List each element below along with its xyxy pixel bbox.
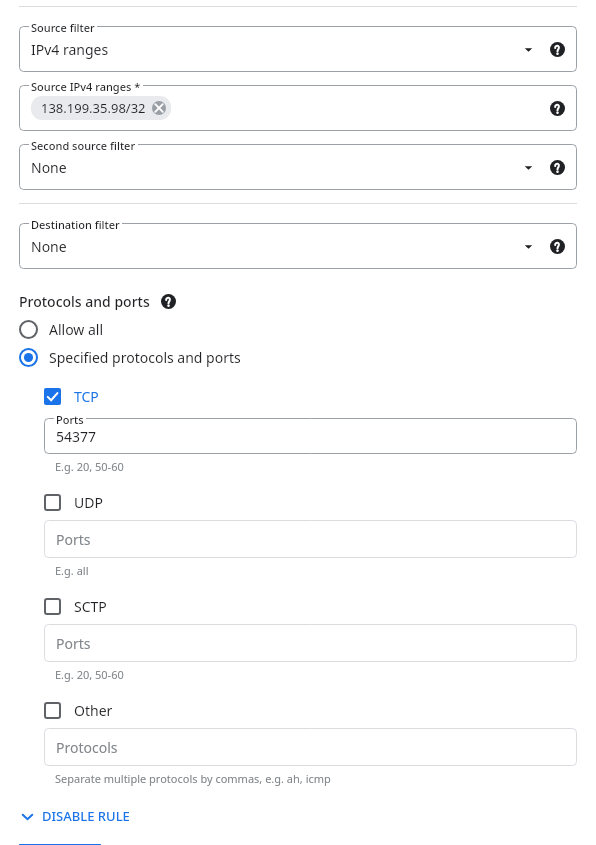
staticText: Other — [74, 701, 113, 720]
staticText: None — [31, 158, 517, 177]
button[interactable]: Help about source IPv4 ranges — [545, 96, 569, 120]
staticText: Ports — [56, 412, 84, 427]
button[interactable]: Open Second source filter menu — [517, 156, 539, 178]
button[interactable]: 138.199.35.98/32 — [31, 96, 171, 120]
staticText: E.g. 20, 50-60 — [55, 667, 124, 682]
staticText: Source IPv4 ranges * — [31, 79, 141, 94]
staticText: Protocols — [56, 738, 118, 757]
staticText: 54377 — [56, 427, 97, 446]
staticText: Second source filter — [31, 138, 136, 153]
button[interactable]: Open Destination filter menu — [517, 235, 539, 257]
staticText: 138.199.35.98/32 — [41, 99, 146, 117]
button[interactable]: Specified protocols and ports — [19, 344, 596, 371]
button[interactable]: Ports — [44, 418, 577, 454]
staticText: UDP — [74, 493, 103, 512]
button[interactable]: Help about destination filter — [545, 234, 569, 258]
staticText: Specified protocols and ports — [49, 348, 241, 367]
staticText: DISABLE RULE — [42, 807, 130, 825]
button[interactable]: Open Source filter menu — [517, 38, 539, 60]
button[interactable]: Ports — [44, 520, 577, 558]
button[interactable]: SCTP — [44, 593, 596, 619]
button[interactable]: Protocols — [44, 728, 577, 766]
staticText: Separate multiple protocols by commas, e… — [55, 771, 331, 786]
staticText: Source filter — [31, 20, 95, 35]
button[interactable]: TCP — [44, 383, 596, 409]
staticText: TCP — [74, 387, 99, 406]
button[interactable]: Help about protocols and ports — [156, 289, 180, 313]
staticText: Allow all — [49, 320, 104, 339]
button[interactable]: Second source filter — [19, 144, 577, 190]
button[interactable]: Other — [44, 697, 596, 723]
staticText: Ports — [56, 634, 91, 653]
button[interactable]: Ports — [44, 624, 577, 662]
staticText: SCTP — [74, 597, 107, 616]
staticText: E.g. 20, 50-60 — [55, 459, 124, 474]
button[interactable]: Allow all — [19, 316, 596, 343]
staticText: None — [31, 237, 517, 256]
button[interactable]: UDP — [44, 489, 596, 515]
staticText: IPv4 ranges — [31, 40, 517, 59]
staticText: Destination filter — [31, 217, 120, 232]
button[interactable]: CREATE — [19, 844, 101, 845]
button[interactable]: DISABLE RULE — [19, 807, 130, 825]
staticText: Protocols and ports — [19, 292, 150, 311]
staticText: Ports — [56, 530, 91, 549]
button[interactable]: Destination filter — [19, 223, 577, 269]
button[interactable]: Source filter — [19, 26, 577, 72]
button[interactable]: Source IPv4 ranges * — [19, 85, 577, 131]
button[interactable]: Help about second source filter — [545, 155, 569, 179]
button[interactable]: Remove 138.199.35.98/32 — [152, 101, 166, 115]
staticText: E.g. all — [55, 563, 89, 578]
button[interactable]: Help about source filter — [545, 37, 569, 61]
